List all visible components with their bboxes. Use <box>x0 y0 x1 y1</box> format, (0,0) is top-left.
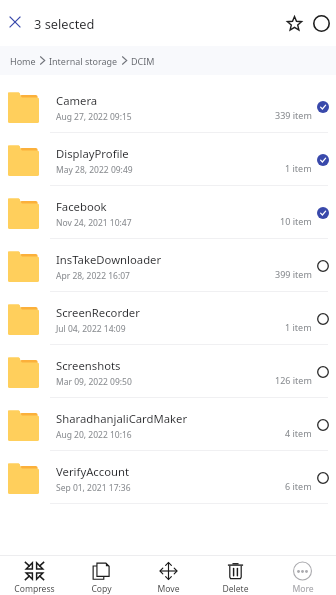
staticText: Nov 24, 2021 10:47 <box>56 217 132 229</box>
button[interactable]: SharadhanjaliCardMaker <box>0 398 336 451</box>
staticText: DisplayProfile <box>56 146 296 161</box>
button[interactable]: VerifyAccount <box>0 451 336 504</box>
staticText: 10 item <box>280 215 312 227</box>
staticText: May 28, 2022 09:49 <box>56 164 133 176</box>
button[interactable]: More <box>269 556 336 595</box>
staticText: VerifyAccount <box>56 464 296 479</box>
staticText: 399 item <box>275 268 312 280</box>
button[interactable]: Selected <box>317 207 329 219</box>
button[interactable]: DCIM <box>131 55 155 67</box>
staticText: InsTakeDownloader <box>56 252 296 267</box>
button[interactable]: Not selected <box>317 472 329 484</box>
button[interactable]: Camera <box>0 80 336 133</box>
button[interactable]: Not selected <box>317 366 329 378</box>
staticText: Jul 04, 2022 14:09 <box>56 323 126 335</box>
button[interactable]: Delete <box>202 556 269 595</box>
staticText: 1 item <box>285 321 312 333</box>
button[interactable]: Selected <box>317 154 329 166</box>
staticText: Internal storage <box>49 55 118 67</box>
button[interactable]: Select all <box>307 9 336 38</box>
staticText: Home <box>10 55 36 67</box>
staticText: Copy <box>91 583 112 595</box>
staticText: Delete <box>222 583 249 595</box>
button[interactable]: DisplayProfile <box>0 133 336 186</box>
button[interactable]: Favorite <box>280 9 309 38</box>
staticText: 4 item <box>285 427 312 439</box>
staticText: SharadhanjaliCardMaker <box>56 411 296 426</box>
button[interactable]: Move <box>135 556 202 595</box>
button[interactable]: Not selected <box>317 419 329 431</box>
staticText: Move <box>157 583 180 595</box>
staticText: 3 selected <box>34 15 95 32</box>
staticText: Apr 28, 2022 16:07 <box>56 270 130 282</box>
staticText: Sep 01, 2021 17:36 <box>56 482 131 494</box>
staticText: Facebook <box>56 199 296 214</box>
button[interactable]: ScreenRecorder <box>0 292 336 345</box>
button[interactable]: Close selection <box>0 8 30 38</box>
button[interactable]: Compress <box>0 556 68 595</box>
button[interactable]: Copy <box>68 556 135 595</box>
staticText: 126 item <box>275 374 312 386</box>
staticText: Compress <box>14 583 55 595</box>
button[interactable]: Facebook <box>0 186 336 239</box>
staticText: DCIM <box>131 55 155 67</box>
staticText: 6 item <box>285 480 312 492</box>
button[interactable]: Not selected <box>317 313 329 325</box>
button[interactable]: Internal storage <box>49 55 118 67</box>
button[interactable]: Not selected <box>317 260 329 272</box>
staticText: Camera <box>56 93 296 108</box>
staticText: Aug 20, 2022 10:16 <box>56 429 132 441</box>
staticText: Mar 09, 2022 09:50 <box>56 376 132 388</box>
staticText: 339 item <box>275 109 312 121</box>
button[interactable]: Home <box>10 55 36 67</box>
button[interactable]: Selected <box>317 101 329 113</box>
button[interactable]: Screenshots <box>0 345 336 398</box>
staticText: Screenshots <box>56 358 296 373</box>
staticText: ScreenRecorder <box>56 305 296 320</box>
staticText: 1 item <box>285 162 312 174</box>
staticText: More <box>292 583 314 595</box>
button[interactable]: InsTakeDownloader <box>0 239 336 292</box>
staticText: Aug 27, 2022 09:15 <box>56 111 132 123</box>
